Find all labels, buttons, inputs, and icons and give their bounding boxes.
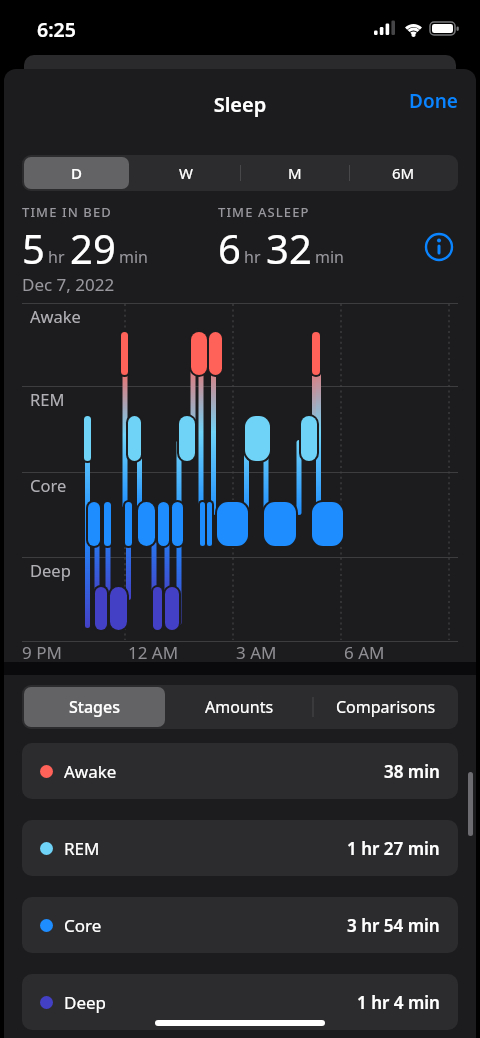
staticText: Core — [64, 914, 102, 937]
staticText: TIME ASLEEP — [218, 203, 310, 221]
staticText: Dec 7, 2022 — [22, 273, 115, 296]
button[interactable]: Core — [22, 897, 458, 953]
staticText: Deep — [64, 991, 107, 1014]
button[interactable]: Done — [394, 85, 464, 117]
staticText: 12 AM — [128, 641, 179, 664]
staticText: Deep — [30, 559, 71, 581]
staticText: Amounts — [205, 696, 274, 718]
staticText: Core — [30, 474, 67, 496]
staticText: REM — [30, 388, 65, 410]
button[interactable]: D — [22, 155, 131, 191]
staticText: 3 hr 54 min — [347, 914, 440, 937]
staticText: hr — [48, 246, 65, 268]
staticText: D — [71, 163, 82, 183]
staticText: 3 AM — [236, 641, 277, 664]
staticText: 38 min — [384, 760, 440, 783]
staticText: Comparisons — [336, 696, 436, 718]
staticText: 6:25 — [37, 16, 76, 43]
button[interactable] — [420, 227, 460, 267]
button[interactable]: Stages — [22, 685, 167, 729]
staticText: 9 PM — [22, 641, 62, 664]
staticText: 1 hr 27 min — [347, 837, 440, 860]
staticText: Awake — [30, 305, 81, 327]
staticText: Stages — [69, 696, 120, 718]
staticText: Sleep — [4, 91, 476, 118]
button[interactable]: REM — [22, 820, 458, 876]
staticText: min — [119, 246, 148, 268]
staticText: 6 AM — [344, 641, 385, 664]
staticText: 29 — [70, 221, 116, 275]
button[interactable]: Awake — [22, 743, 458, 799]
staticText: 6 — [218, 221, 241, 275]
button[interactable]: M — [240, 155, 349, 191]
button[interactable]: Comparisons — [313, 685, 458, 729]
staticText: 5 — [22, 221, 45, 275]
staticText: Awake — [64, 760, 117, 783]
staticText: hr — [244, 246, 261, 268]
button[interactable]: 6M — [349, 155, 458, 191]
staticText: 32 — [266, 221, 312, 275]
staticText: TIME IN BED — [22, 203, 112, 221]
staticText: M — [288, 163, 302, 183]
button[interactable]: Deep — [22, 974, 458, 1030]
staticText: Done — [409, 88, 458, 114]
staticText: REM — [64, 837, 100, 860]
button[interactable]: Amounts — [167, 685, 312, 729]
staticText: W — [179, 163, 193, 183]
staticText: 1 hr 4 min — [357, 991, 440, 1014]
staticText: 6M — [392, 163, 415, 183]
staticText: min — [315, 246, 344, 268]
button[interactable]: W — [131, 155, 240, 191]
